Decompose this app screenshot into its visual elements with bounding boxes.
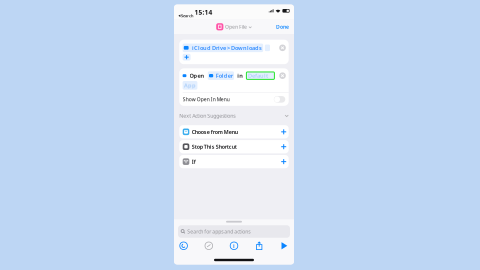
staticText: If [192, 158, 196, 165]
staticText: Stop This Shortcut [192, 143, 237, 150]
button[interactable]: Automations [201, 241, 217, 251]
button[interactable]: Show Open In Menu [179, 93, 289, 106]
button[interactable]: Info [226, 241, 242, 251]
staticText: iCloud Drive > Downloads [192, 44, 262, 51]
button[interactable]: If [179, 155, 289, 168]
button[interactable]: Add parameter [183, 54, 191, 60]
staticText: Show Open In Menu [183, 96, 230, 102]
button[interactable]: Shortcut details [176, 241, 192, 251]
staticText: Open [190, 72, 205, 79]
button[interactable]: Clear value [279, 44, 289, 51]
staticText: Done [276, 23, 289, 30]
button[interactable]: Choose from Menu [179, 125, 289, 138]
button[interactable]: Run shortcut [276, 241, 292, 251]
button[interactable]: Done [271, 20, 294, 33]
staticText: 15:14 [194, 8, 212, 16]
staticText: Search [181, 13, 193, 18]
button[interactable]: Stop This Shortcut [179, 140, 289, 153]
staticText: Choose from Menu [192, 128, 238, 135]
staticText: App [184, 82, 196, 89]
staticText: Next Action Suggestions [179, 112, 235, 119]
staticText: Search for apps and actions [187, 228, 250, 235]
button[interactable]: Clear value [279, 72, 289, 79]
staticText: Folder [216, 72, 233, 79]
button[interactable]: Share [251, 241, 267, 251]
staticText: i [233, 242, 235, 250]
button[interactable]: Search for apps and actions [178, 225, 290, 238]
staticText: Default [248, 72, 268, 79]
staticText: Open File [225, 23, 247, 30]
staticText: in [237, 72, 243, 79]
button[interactable]: Open File [216, 21, 252, 33]
button[interactable]: Next Action Suggestions [174, 106, 294, 125]
